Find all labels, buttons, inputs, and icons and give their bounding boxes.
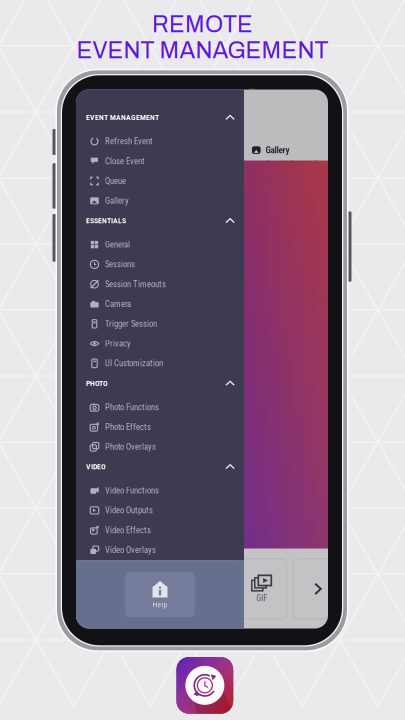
- staticText: Gallery: [105, 196, 129, 206]
- staticText: Photo Functions: [105, 402, 159, 412]
- button[interactable]: Help: [125, 572, 195, 617]
- staticText: Refresh Event: [105, 136, 153, 146]
- staticText: Session Timeouts: [105, 279, 166, 289]
- button[interactable]: Photo Functions: [76, 397, 244, 417]
- button[interactable]: GIF: [237, 559, 287, 619]
- button[interactable]: General: [76, 235, 244, 254]
- staticText: Photo Overlays: [105, 442, 156, 452]
- staticText: Privacy: [105, 338, 131, 349]
- staticText: Camera: [105, 299, 131, 309]
- button[interactable]: Video Functions: [76, 481, 244, 500]
- button[interactable]: Photo Overlays: [76, 437, 244, 457]
- staticText: Help: [152, 600, 167, 609]
- button[interactable]: Photo Effects: [76, 417, 244, 437]
- staticText: Video Functions: [105, 485, 159, 496]
- staticText: GIF: [256, 593, 267, 603]
- staticText: ESSENTIALS: [86, 216, 126, 225]
- button[interactable]: Privacy: [76, 334, 244, 353]
- staticText: General: [105, 239, 130, 250]
- button[interactable]: Refresh Event: [76, 131, 244, 151]
- button[interactable]: Trigger Session: [76, 314, 244, 334]
- staticText: UI Customization: [105, 358, 163, 368]
- button[interactable]: Video Outputs: [76, 500, 244, 520]
- staticText: EVENT MANAGEMENT: [76, 38, 328, 63]
- staticText: Sessions: [105, 259, 135, 269]
- staticText: Trigger Session: [105, 319, 157, 329]
- button[interactable]: Camera: [76, 294, 244, 314]
- staticText: Video Outputs: [105, 505, 153, 515]
- staticText: Close Event: [105, 156, 145, 166]
- staticText: Queue: [105, 176, 126, 186]
- button[interactable]: Gallery: [76, 191, 244, 211]
- staticText: Gallery: [266, 145, 290, 155]
- staticText: PHOTO: [86, 379, 108, 388]
- button[interactable]: Next: [293, 559, 343, 619]
- button[interactable]: Sessions: [76, 254, 244, 274]
- staticText: EVENT MANAGEMENT: [86, 113, 159, 122]
- button[interactable]: Queue: [76, 171, 244, 191]
- staticText: Video Overlays: [105, 545, 156, 555]
- button[interactable]: Close Event: [76, 151, 244, 171]
- button[interactable]: UI Customization: [76, 353, 244, 373]
- button[interactable]: Video Effects: [76, 520, 244, 540]
- staticText: REMOTE: [152, 12, 253, 37]
- staticText: Video Effects: [105, 525, 151, 535]
- button[interactable]: Video Overlays: [76, 540, 244, 560]
- button[interactable]: Session Timeouts: [76, 274, 244, 294]
- staticText: Photo Effects: [105, 422, 151, 432]
- staticText: VIDEO: [86, 462, 106, 471]
